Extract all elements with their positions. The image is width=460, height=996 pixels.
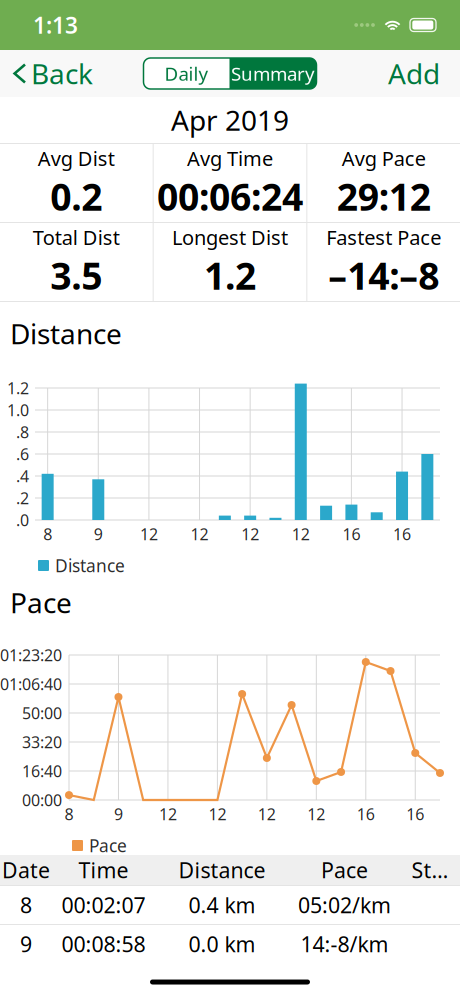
staticText: 12	[140, 523, 158, 545]
staticText: 1.2	[204, 250, 256, 300]
staticText: 14:-8/km	[300, 930, 388, 958]
staticText: 0.0 km	[188, 930, 255, 958]
staticText: 05:02/km	[298, 891, 391, 919]
staticText: 1.0	[7, 399, 29, 421]
button[interactable]: Add	[388, 45, 460, 102]
staticText: St…	[411, 856, 448, 884]
staticText: 8	[43, 523, 52, 545]
staticText: .4	[16, 465, 29, 487]
staticText: Date	[2, 856, 50, 884]
staticText: Pace	[89, 834, 127, 857]
staticText: Distance	[10, 315, 122, 352]
staticText: .0	[16, 509, 29, 531]
button[interactable]: Daily	[143, 58, 229, 89]
staticText: Distance	[55, 554, 125, 577]
staticText: Longest Dist	[172, 224, 288, 250]
staticText: Apr 2019	[171, 101, 289, 139]
staticText: 12	[190, 523, 208, 545]
staticText: Avg Pace	[342, 145, 426, 171]
staticText: 16	[393, 523, 411, 545]
staticText: Total Dist	[33, 224, 120, 250]
staticText: 9	[20, 930, 32, 958]
staticText: 12	[208, 803, 226, 825]
staticText: 16:40	[22, 760, 62, 782]
staticText: 12	[292, 523, 310, 545]
button[interactable]: Summary	[229, 58, 316, 89]
staticText: 1.2	[7, 377, 29, 399]
staticText: 1:13	[33, 10, 78, 40]
staticText: 01:23:20	[0, 644, 62, 666]
staticText: 33:20	[22, 731, 62, 753]
staticText: 16	[406, 803, 424, 825]
staticText: Add	[388, 55, 440, 92]
staticText: 9	[114, 803, 123, 825]
staticText: 00:06:24	[157, 171, 303, 221]
staticText: 16	[357, 803, 375, 825]
staticText: .8	[16, 421, 29, 443]
staticText: 12	[241, 523, 259, 545]
staticText: Summary	[231, 61, 315, 86]
staticText: 12	[159, 803, 177, 825]
staticText: Avg Dist	[38, 145, 115, 171]
staticText: 0.2	[50, 171, 102, 221]
staticText: 50:00	[22, 702, 62, 724]
staticText: 00:08:58	[61, 930, 145, 958]
staticText: Pace	[321, 856, 368, 884]
staticText: 12	[307, 803, 325, 825]
staticText: 00:00	[22, 789, 62, 811]
staticText: Daily	[164, 61, 208, 86]
staticText: 16	[342, 523, 360, 545]
staticText: 12	[258, 803, 276, 825]
staticText: .2	[16, 487, 29, 509]
staticText: –14:–8	[328, 250, 439, 300]
staticText: 01:06:40	[0, 673, 62, 695]
staticText: 3.5	[50, 250, 102, 300]
staticText: 8	[64, 803, 73, 825]
staticText: Fastest Pace	[326, 224, 441, 250]
staticText: 29:12	[337, 171, 431, 221]
staticText: .6	[16, 443, 29, 465]
button[interactable]: Back	[0, 45, 93, 102]
staticText: Back	[31, 55, 93, 92]
staticText: Pace	[10, 584, 72, 621]
staticText: 0.4 km	[188, 891, 255, 919]
staticText: 8	[20, 891, 32, 919]
staticText: 9	[94, 523, 103, 545]
staticText: Avg Time	[187, 145, 273, 171]
staticText: Distance	[178, 856, 265, 884]
staticText: 00:02:07	[61, 891, 145, 919]
staticText: Time	[78, 856, 128, 884]
